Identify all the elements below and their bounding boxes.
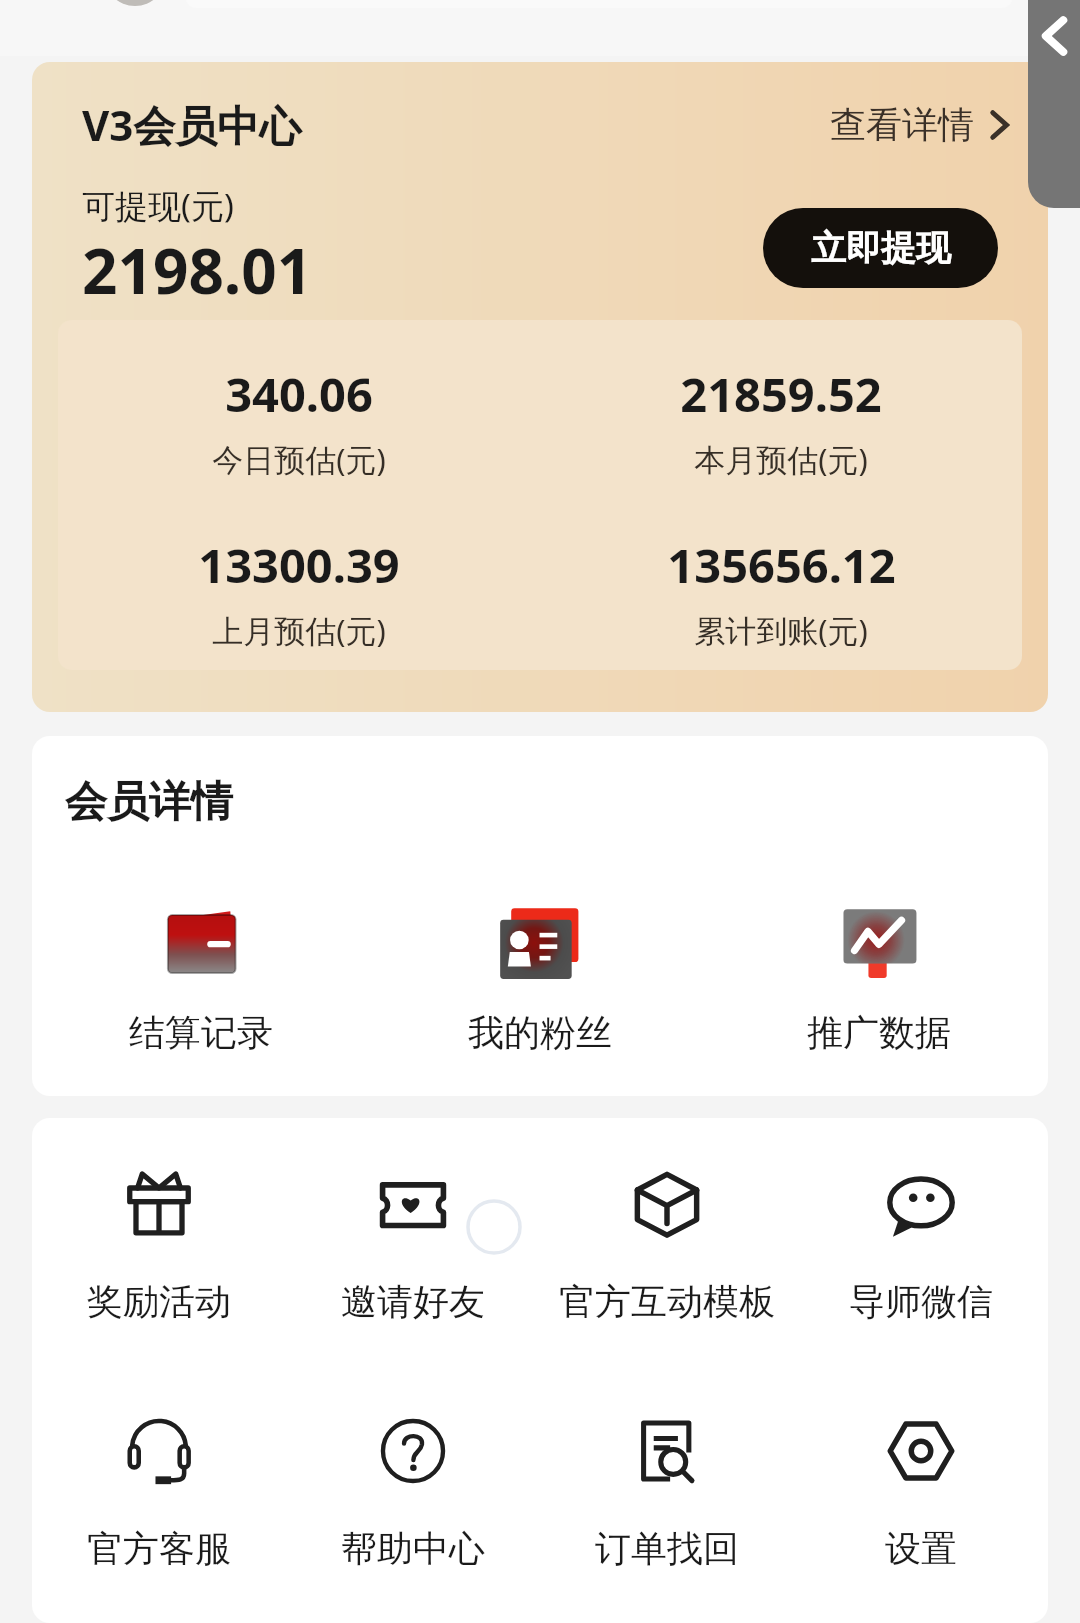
staticText: 2198.01 xyxy=(82,228,313,312)
staticText: 340.06 xyxy=(225,362,373,426)
staticText: 推广数据 xyxy=(807,1010,951,1055)
staticText: 会员详情 xyxy=(65,776,233,829)
staticText: 设置 xyxy=(885,1526,957,1571)
staticText: 立即提现 xyxy=(811,226,951,270)
button[interactable]: 21859.52 xyxy=(540,362,1022,480)
button[interactable]: 帮助中心 xyxy=(286,1412,540,1571)
button[interactable]: 推广数据 xyxy=(709,892,1048,1055)
staticText: 官方客服 xyxy=(87,1526,231,1571)
staticText: 可提现(元) xyxy=(82,183,234,228)
staticText: 查看详情 xyxy=(830,102,974,147)
staticText: 今日预估(元) xyxy=(212,438,386,480)
button[interactable]: 订单找回 xyxy=(540,1412,794,1571)
button[interactable]: 奖励活动 xyxy=(32,1165,286,1324)
staticText: 帮助中心 xyxy=(341,1526,485,1571)
button[interactable]: 立即提现 xyxy=(763,208,998,288)
button[interactable]: 13300.39 xyxy=(58,533,540,651)
button[interactable]: 设置 xyxy=(794,1412,1048,1571)
staticText: 我的粉丝 xyxy=(468,1010,612,1055)
button[interactable]: 导师微信 xyxy=(794,1165,1048,1324)
button[interactable]: Back xyxy=(1028,0,1080,208)
staticText: 结算记录 xyxy=(129,1010,273,1055)
staticText: V3会员中心 xyxy=(82,96,302,153)
button[interactable]: 我的粉丝 xyxy=(370,892,709,1055)
button[interactable]: 官方客服 xyxy=(32,1412,286,1571)
staticText: 导师微信 xyxy=(849,1279,993,1324)
button[interactable]: 查看详情 xyxy=(830,102,1018,147)
staticText: 累计到账(元) xyxy=(694,609,868,651)
staticText: 13300.39 xyxy=(198,533,400,597)
button[interactable]: 邀请好友 xyxy=(286,1165,540,1324)
button[interactable]: 135656.12 xyxy=(540,533,1022,651)
staticText: 订单找回 xyxy=(595,1526,739,1571)
staticText: 本月预估(元) xyxy=(694,438,868,480)
staticText: 奖励活动 xyxy=(87,1279,231,1324)
staticText: 135656.12 xyxy=(667,533,896,597)
button[interactable]: 官方互动模板 xyxy=(540,1165,794,1324)
staticText: 官方互动模板 xyxy=(559,1279,775,1324)
button[interactable]: 结算记录 xyxy=(32,892,370,1055)
staticText: 邀请好友 xyxy=(341,1279,485,1324)
staticText: 21859.52 xyxy=(680,362,882,426)
button[interactable]: 340.06 xyxy=(58,362,540,480)
staticText: 上月预估(元) xyxy=(212,609,386,651)
